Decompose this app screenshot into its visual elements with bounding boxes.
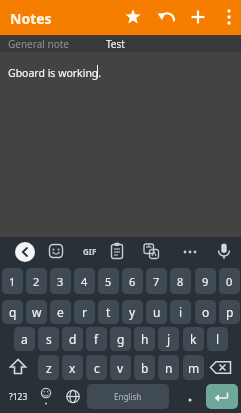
button[interactable] [153,3,181,31]
button[interactable]: 3 [50,268,71,294]
staticText: Gboard is working. [8,66,102,80]
button[interactable]: d [62,327,83,351]
button[interactable] [207,355,239,380]
button[interactable] [43,238,69,264]
button[interactable]: ?123 [4,384,32,409]
button[interactable]: 2 [26,268,47,294]
button[interactable]: t [98,300,119,324]
button[interactable]: 7 [146,268,167,294]
button[interactable]: u [146,300,167,324]
staticText: d [69,331,77,347]
button[interactable] [138,238,164,264]
button[interactable]: n [158,355,179,380]
button[interactable]: 1 [2,268,23,294]
button[interactable] [119,3,147,31]
button[interactable]: a [14,327,35,351]
staticText: o [202,304,210,320]
button[interactable] [104,238,130,264]
staticText: English [114,391,142,402]
staticText: f [94,331,99,347]
button[interactable]: c [86,355,107,380]
button[interactable] [2,355,34,380]
staticText: 3 [57,274,64,289]
button[interactable]: f [86,327,107,351]
button[interactable]: 5 [98,268,119,294]
button[interactable] [12,239,38,265]
button[interactable]: x [62,355,83,380]
staticText: n [165,360,173,376]
button[interactable]: Test [100,35,180,52]
staticText: e [57,304,64,320]
button[interactable]: General note [0,35,95,52]
staticText: h [141,331,149,347]
button[interactable] [61,384,85,409]
staticText: w [32,304,42,320]
button[interactable] [177,238,203,264]
staticText: a [21,331,28,347]
staticText: r [82,304,87,320]
button[interactable] [211,238,237,264]
button[interactable]: GIF [76,238,103,264]
staticText: y [129,304,136,320]
button[interactable]: 9 [195,268,216,294]
staticText: Notes [10,9,52,28]
button[interactable]: v [110,355,131,380]
staticText: q [9,304,17,320]
staticText: 4 [81,274,88,289]
staticText: v [117,360,124,376]
staticText: c [94,360,100,376]
button[interactable]: 6 [122,268,143,294]
staticText: s [46,331,52,347]
button[interactable]: q [2,300,23,324]
button[interactable] [184,3,212,31]
button[interactable] [215,3,241,31]
button[interactable]: s [38,327,59,351]
button[interactable]: j [158,327,179,351]
button[interactable]: z [38,355,59,380]
button[interactable]: w [26,300,47,324]
button[interactable]: k [183,327,204,351]
button[interactable]: i [170,300,191,324]
staticText: GIF [83,246,97,257]
staticText: 7 [153,274,160,289]
staticText: 1 [9,274,16,289]
staticText: z [46,360,52,376]
staticText: l [216,331,220,347]
staticText: u [153,304,161,320]
button[interactable]: b [134,355,155,380]
staticText: x [69,360,76,376]
button[interactable]: Gboard is working. [0,52,241,237]
button[interactable]: e [50,300,71,324]
button[interactable]: 4 [74,268,95,294]
button[interactable]: m [183,355,204,380]
button[interactable] [178,384,202,409]
staticText: General note [8,37,69,51]
button[interactable]: y [122,300,143,324]
button[interactable]: 8 [170,268,191,294]
button[interactable]: o [195,300,216,324]
staticText: 2 [33,274,40,289]
button[interactable]: l [207,327,228,351]
staticText: b [141,360,149,376]
button[interactable] [206,384,238,409]
staticText: 8 [177,274,184,289]
staticText: t [106,304,111,320]
button[interactable]: g [110,327,131,351]
staticText: g [117,331,125,347]
staticText: 6 [129,274,136,289]
staticText: ?123 [9,391,28,403]
button[interactable]: h [134,327,155,351]
staticText: Test [106,37,125,51]
button[interactable]: r [74,300,95,324]
button[interactable] [34,384,58,409]
staticText: k [190,331,197,347]
button[interactable]: 0 [219,268,240,294]
staticText: 5 [105,274,112,289]
staticText: i [179,304,183,320]
staticText: p [226,304,234,320]
staticText: m [188,360,200,376]
button[interactable]: English [87,384,169,409]
button[interactable]: p [219,300,240,324]
staticText: 0 [226,274,233,289]
staticText: j [167,331,171,347]
